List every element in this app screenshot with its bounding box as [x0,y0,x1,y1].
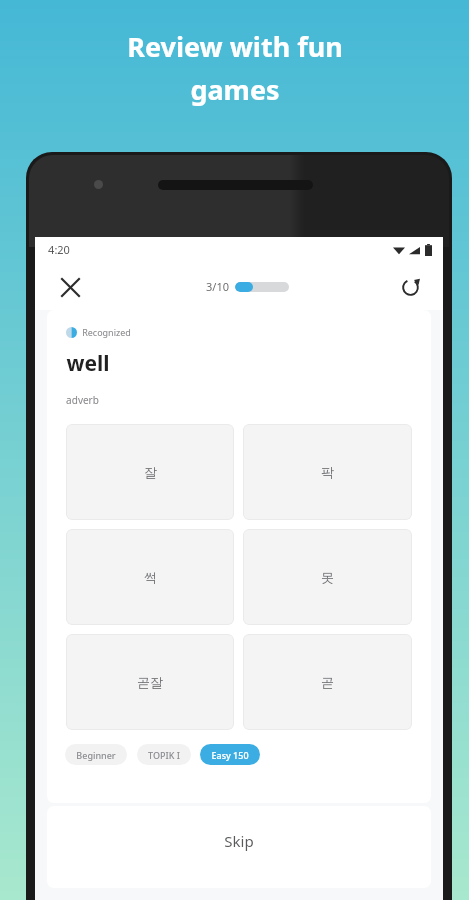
staticText: Beginner [76,749,116,761]
staticText: Review with fun [127,28,343,65]
staticText: 곧 [321,674,334,690]
button[interactable]: Refresh [389,266,431,308]
button[interactable]: TOPIK I [148,744,180,765]
button[interactable]: 잘 [66,424,234,520]
staticText: 썩 [144,569,157,585]
button[interactable]: 팍 [243,424,412,520]
staticText: 못 [321,569,334,585]
staticText: well [66,349,110,378]
staticText: games [190,71,280,108]
staticText: 팍 [321,464,334,480]
button[interactable]: 곧잘 [66,634,234,730]
button[interactable]: Skip [47,806,431,888]
button[interactable]: Easy 150 [211,744,249,765]
staticText: 잘 [144,464,157,480]
button[interactable]: Beginner [76,744,116,765]
button[interactable]: Close [49,266,91,308]
button[interactable]: 못 [243,529,412,625]
staticText: 3/10 [206,279,229,294]
staticText: 4:20 [48,242,70,257]
staticText: 곧잘 [137,674,163,690]
staticText: Skip [224,831,254,851]
staticText: TOPIK I [148,749,180,761]
staticText: Recognized [82,326,131,338]
staticText: Easy 150 [211,749,249,761]
button[interactable]: 썩 [66,529,234,625]
staticText: adverb [66,393,99,407]
button[interactable]: 곧 [243,634,412,730]
